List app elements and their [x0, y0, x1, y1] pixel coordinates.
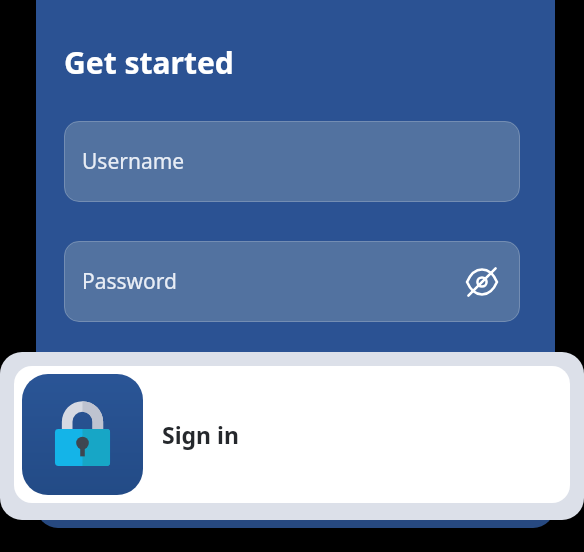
staticText: Get started: [64, 42, 234, 83]
button[interactable]: Password: [64, 241, 520, 322]
staticText: Password: [82, 267, 177, 296]
button[interactable]: Username: [64, 121, 520, 202]
button[interactable]: Sign in: [14, 366, 570, 503]
staticText: Sign in: [162, 419, 239, 450]
button[interactable]: Show password: [458, 258, 506, 306]
staticText: Username: [82, 147, 185, 176]
